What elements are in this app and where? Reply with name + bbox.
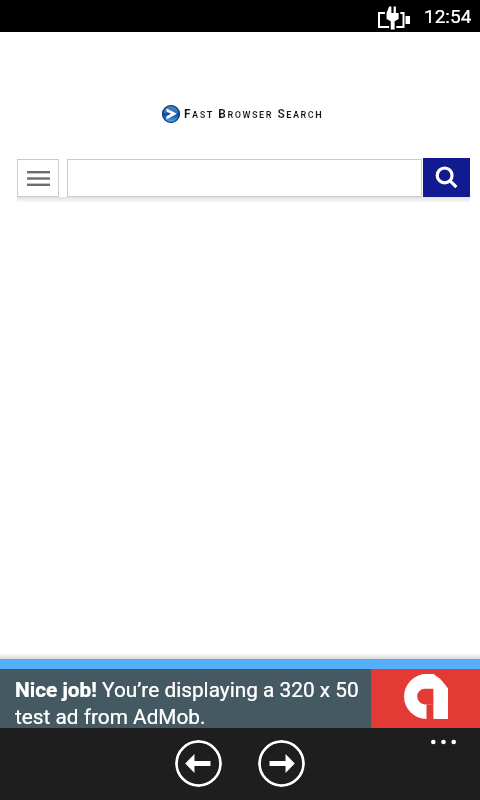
staticText: FAST BROWSER SEARCH bbox=[184, 107, 324, 121]
button[interactable]: Forward bbox=[258, 740, 305, 787]
button[interactable]: AdMob bbox=[371, 669, 480, 728]
button[interactable]: Back bbox=[175, 740, 222, 787]
staticText: 12:54 bbox=[424, 5, 472, 27]
button[interactable]: Search bbox=[423, 158, 470, 197]
staticText: Nice job! You’re displaying a 320 x 50 t… bbox=[15, 678, 367, 729]
button[interactable]: More options bbox=[424, 729, 462, 755]
button[interactable]: Search box bbox=[67, 159, 422, 197]
button[interactable]: Menu bbox=[17, 159, 59, 197]
